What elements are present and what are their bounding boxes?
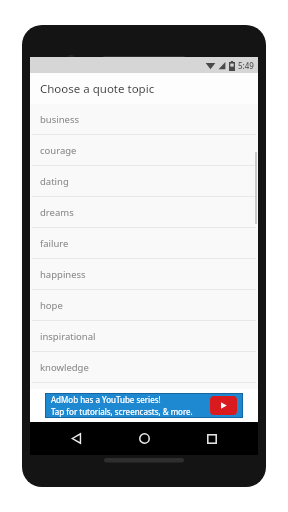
staticText: happiness — [40, 268, 86, 281]
button[interactable]: dreams — [30, 197, 258, 228]
staticText: business — [40, 113, 80, 126]
button[interactable]: Recent apps — [190, 422, 234, 455]
staticText: knowledge — [40, 361, 89, 374]
staticText: courage — [40, 144, 77, 157]
staticText: 5:49 — [238, 60, 254, 71]
button[interactable]: Home — [122, 422, 166, 455]
staticText: dating — [40, 175, 69, 188]
staticText: inspirational — [40, 330, 96, 343]
staticText: dreams — [40, 206, 74, 219]
staticText: Tap for tutorials, screencasts, & more. — [51, 406, 193, 417]
button[interactable]: Play YouTube video — [210, 396, 237, 415]
button[interactable]: courage — [30, 135, 258, 166]
button[interactable]: inspirational — [30, 321, 258, 352]
button[interactable]: failure — [30, 228, 258, 259]
button[interactable]: happiness — [30, 259, 258, 290]
staticText: failure — [40, 237, 69, 250]
staticText: hope — [40, 299, 63, 312]
button[interactable]: Back — [54, 422, 98, 455]
staticText: AdMob has a YouTube series! — [51, 394, 161, 405]
button[interactable]: knowledge — [30, 352, 258, 383]
button[interactable]: dating — [30, 166, 258, 197]
button[interactable]: business — [30, 104, 258, 135]
button[interactable]: hope — [30, 290, 258, 321]
button[interactable]: AdMob has a YouTube series! — [46, 394, 242, 417]
staticText: Choose a quote topic — [40, 81, 155, 97]
